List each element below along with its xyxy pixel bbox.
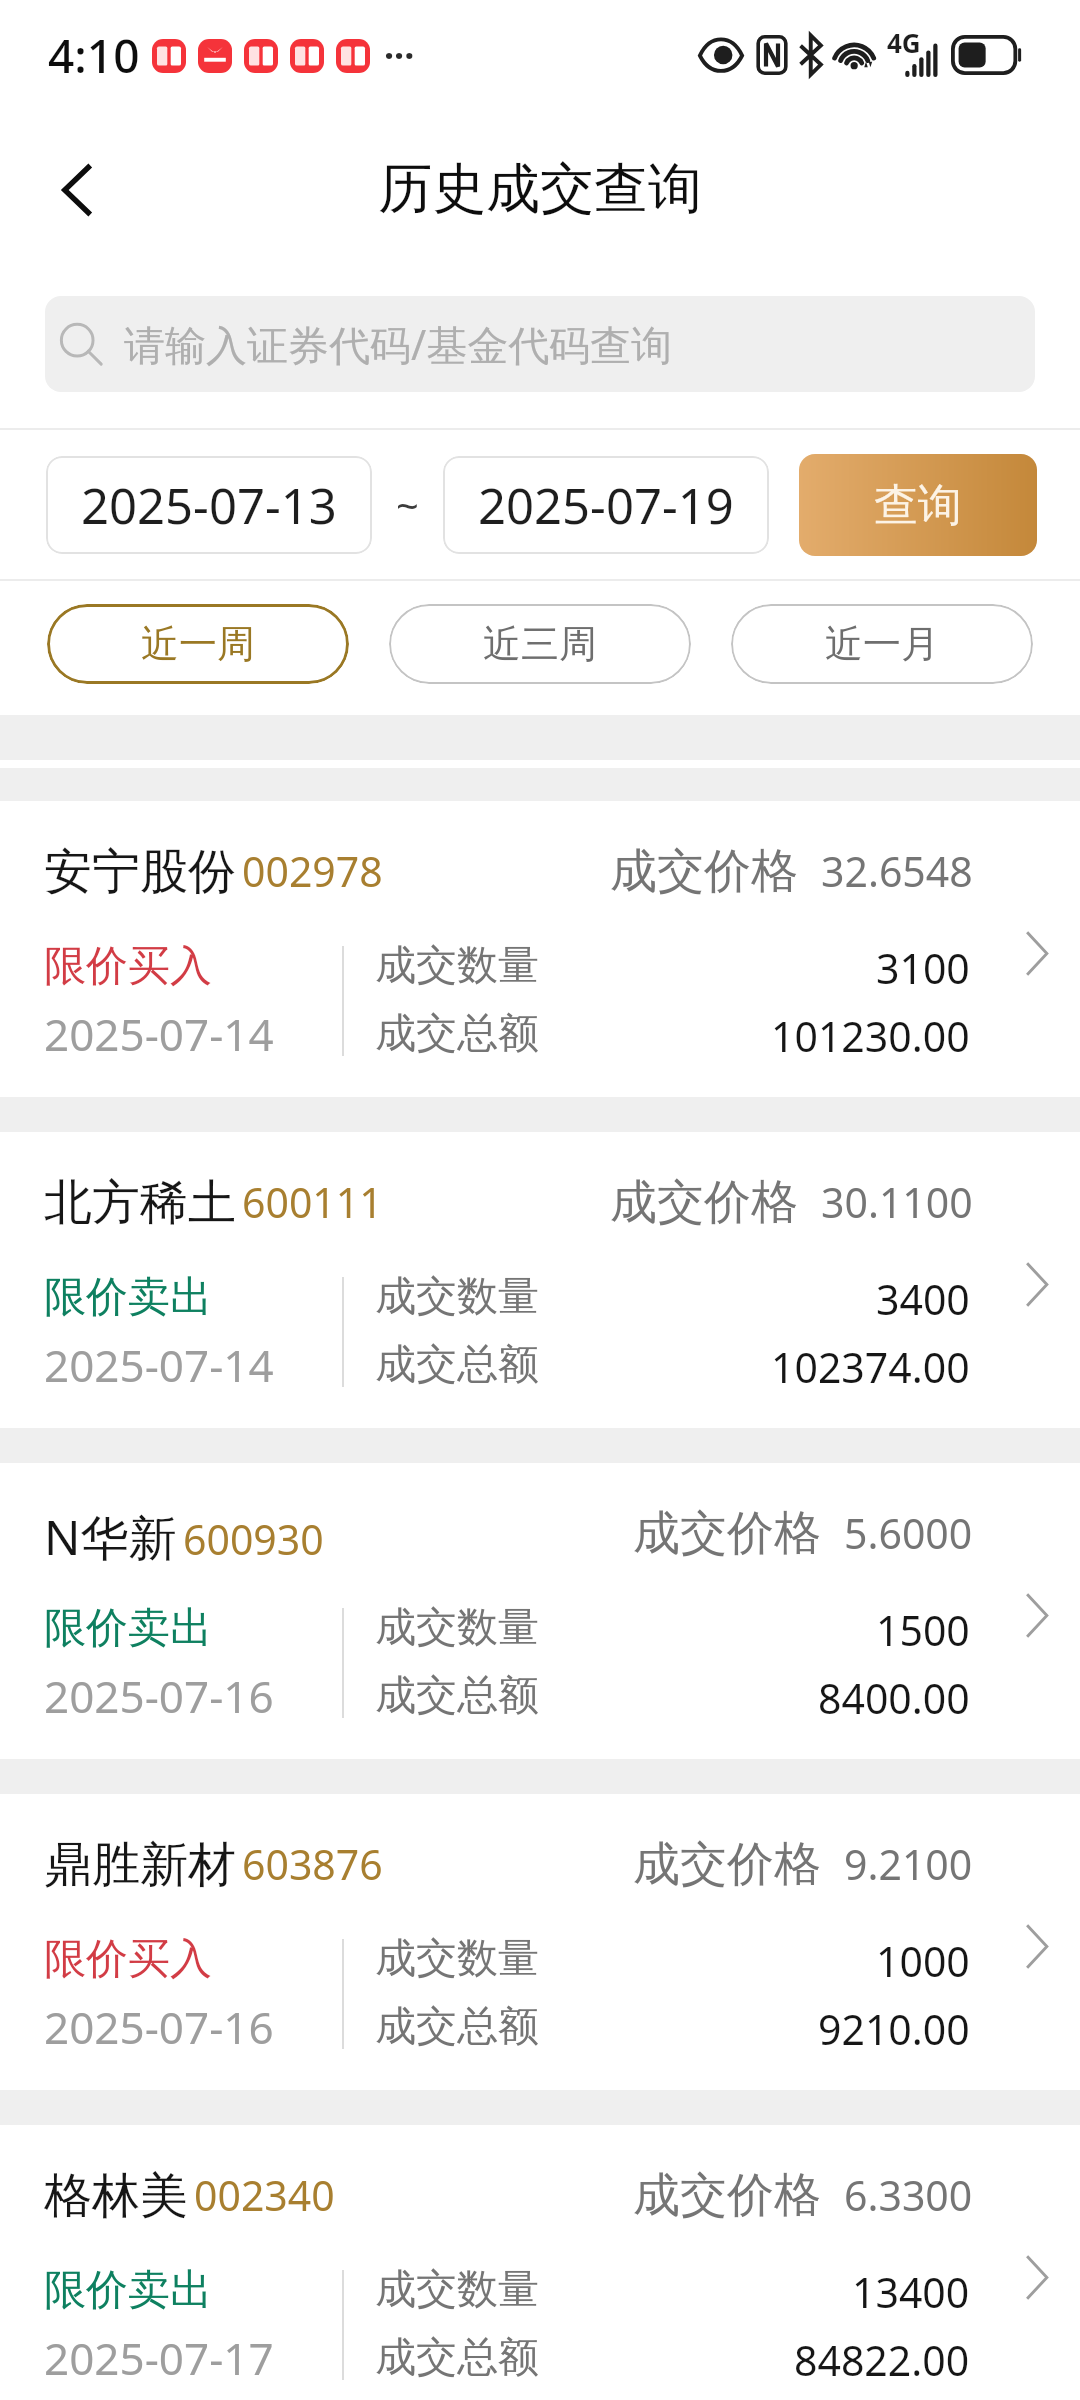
button[interactable]: N华新 [0,1463,1080,1759]
staticText: 2025-07-14 [44,1004,274,1064]
staticText: 30.1100 [821,1174,973,1230]
staticText: 成交价格 [633,1835,821,1894]
staticText: 1000 [876,1933,970,1989]
staticText: 限价卖出 [44,2264,212,2317]
button[interactable]: Back [28,147,124,243]
staticText: 成交总额 [375,1670,539,1722]
staticText: 成交数量 [375,1933,539,1985]
other: Details [1022,2264,1052,2370]
staticText: 5.6000 [844,1505,973,1561]
button[interactable]: 格林美 [0,2125,1080,2400]
staticText: 84822.00 [794,2332,970,2388]
staticText: 查询 [874,478,962,533]
button[interactable]: 北方稀土 [0,1132,1080,1428]
staticText: 成交价格 [610,842,798,901]
staticText: 8400.00 [818,1670,970,1726]
staticText: 成交数量 [375,1271,539,1323]
staticText: 4:10 [48,24,140,87]
staticText: 2025-07-17 [44,2328,274,2388]
staticText: 2025-07-13 [81,472,337,539]
staticText: 成交价格 [610,1173,798,1232]
button[interactable]: 近三周 [389,604,691,684]
staticText: 3100 [876,940,970,996]
staticText: 成交总额 [375,1339,539,1391]
staticText: 13400 [852,2264,970,2320]
staticText: 成交数量 [375,940,539,992]
staticText: 安宁股份 [44,842,236,902]
staticText: 2025-07-16 [44,1666,274,1726]
staticText: 成交价格 [633,2166,821,2225]
staticText: 成交数量 [375,2264,539,2316]
staticText: 限价买入 [44,1933,212,1986]
staticText: 成交价格 [633,1504,821,1563]
staticText: 4G [887,25,921,60]
staticText: 2025-07-14 [44,1335,274,1395]
staticText: N华新 [44,1504,177,1570]
staticText: 002340 [194,2167,335,2223]
button[interactable]: 2025-07-13 [46,456,372,554]
other: Details [1022,940,1052,1046]
button[interactable]: 安宁股份 [0,801,1080,1097]
staticText: 近一周 [141,620,255,668]
staticText: 限价卖出 [44,1602,212,1655]
button[interactable]: 近一月 [731,604,1033,684]
button[interactable]: 2025-07-19 [443,456,769,554]
staticText: 请输入证券代码/基金代码查询 [124,316,673,372]
staticText: 600930 [183,1511,324,1567]
staticText: 近三周 [483,620,597,668]
staticText: 成交数量 [375,1602,539,1654]
other: Details [1022,1602,1052,1708]
staticText: 102374.00 [771,1339,970,1395]
other: Details [1022,1933,1052,2039]
staticText: 成交总额 [375,2332,539,2384]
button[interactable]: 鼎胜新材 [0,1794,1080,2090]
staticText: 3400 [876,1271,970,1327]
staticText: 6.3300 [844,2167,973,2223]
staticText: 鼎胜新材 [44,1835,236,1895]
staticText: 限价买入 [44,940,212,993]
staticText: 603876 [242,1836,383,1892]
staticText: 限价卖出 [44,1271,212,1324]
staticText: ~ [396,478,419,532]
staticText: 600111 [242,1174,383,1230]
staticText: 2025-07-19 [478,472,734,539]
button[interactable]: 查询 [799,454,1037,556]
staticText: 近一月 [825,620,939,668]
button[interactable]: 近一周 [47,604,349,684]
button[interactable]: 请输入证券代码/基金代码查询 [45,296,1035,392]
staticText: 历史成交查询 [378,155,702,223]
staticText: 1500 [876,1602,970,1658]
staticText: 格林美 [44,2166,188,2226]
staticText: ··· [384,31,415,80]
staticText: 北方稀土 [44,1173,236,1233]
other: Details [1022,1271,1052,1377]
staticText: 32.6548 [821,843,973,899]
staticText: 9.2100 [844,1836,973,1892]
staticText: 002978 [242,843,383,899]
staticText: 101230.00 [771,1008,970,1064]
staticText: 成交总额 [375,1008,539,1060]
staticText: 9210.00 [818,2001,970,2057]
staticText: 成交总额 [375,2001,539,2053]
staticText: 2025-07-16 [44,1997,274,2057]
